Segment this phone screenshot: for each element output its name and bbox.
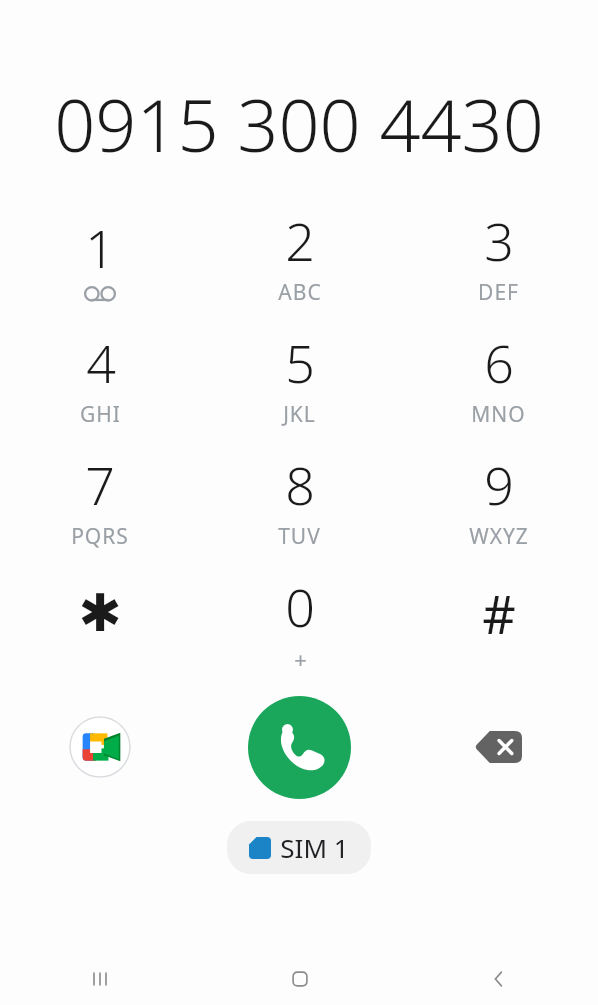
button[interactable]: 6 [399, 317, 598, 439]
staticText: 9 [484, 449, 514, 520]
button[interactable]: 4 [0, 317, 200, 439]
staticText: GHI [80, 400, 121, 429]
staticText: MNO [471, 400, 526, 429]
button[interactable]: Video call with Google Meet [69, 716, 131, 778]
button[interactable]: 8 [200, 439, 399, 561]
staticText: 3 [484, 205, 514, 276]
button[interactable]: Home [200, 953, 399, 1005]
button[interactable]: 1 [0, 195, 200, 317]
button[interactable]: 9 [399, 439, 598, 561]
button[interactable]: ✱ [0, 561, 200, 683]
staticText: + [294, 644, 307, 674]
staticText: 0915 300 4430 [54, 75, 544, 173]
staticText: # [482, 578, 516, 649]
staticText: PQRS [71, 522, 129, 551]
button[interactable]: # [399, 561, 598, 683]
button[interactable]: Backspace [463, 711, 535, 783]
button[interactable]: SIM 1 [227, 821, 371, 874]
button[interactable]: 0915 300 4430 [0, 75, 598, 195]
staticText: ABC [278, 278, 322, 307]
staticText: 0 [285, 571, 315, 642]
staticText: ✱ [78, 583, 122, 644]
button[interactable]: 5 [200, 317, 399, 439]
button[interactable]: 3 [399, 195, 598, 317]
button[interactable]: Call [248, 696, 351, 799]
button[interactable]: 0 [200, 561, 399, 683]
staticText: TUV [278, 522, 321, 551]
button[interactable]: 2 [200, 195, 399, 317]
button[interactable]: Recent apps [0, 953, 200, 1005]
staticText: 2 [285, 205, 315, 276]
staticText: JKL [283, 400, 316, 429]
staticText: WXYZ [469, 522, 529, 551]
staticText: 7 [85, 449, 115, 520]
staticText: 1 [85, 212, 115, 283]
staticText: DEF [478, 278, 519, 307]
staticText: 6 [484, 327, 514, 398]
button[interactable]: Back [399, 953, 598, 1005]
staticText: 4 [86, 327, 116, 398]
staticText: 5 [285, 327, 315, 398]
button[interactable]: 7 [0, 439, 200, 561]
staticText: SIM 1 [280, 830, 349, 865]
staticText: 8 [285, 449, 315, 520]
